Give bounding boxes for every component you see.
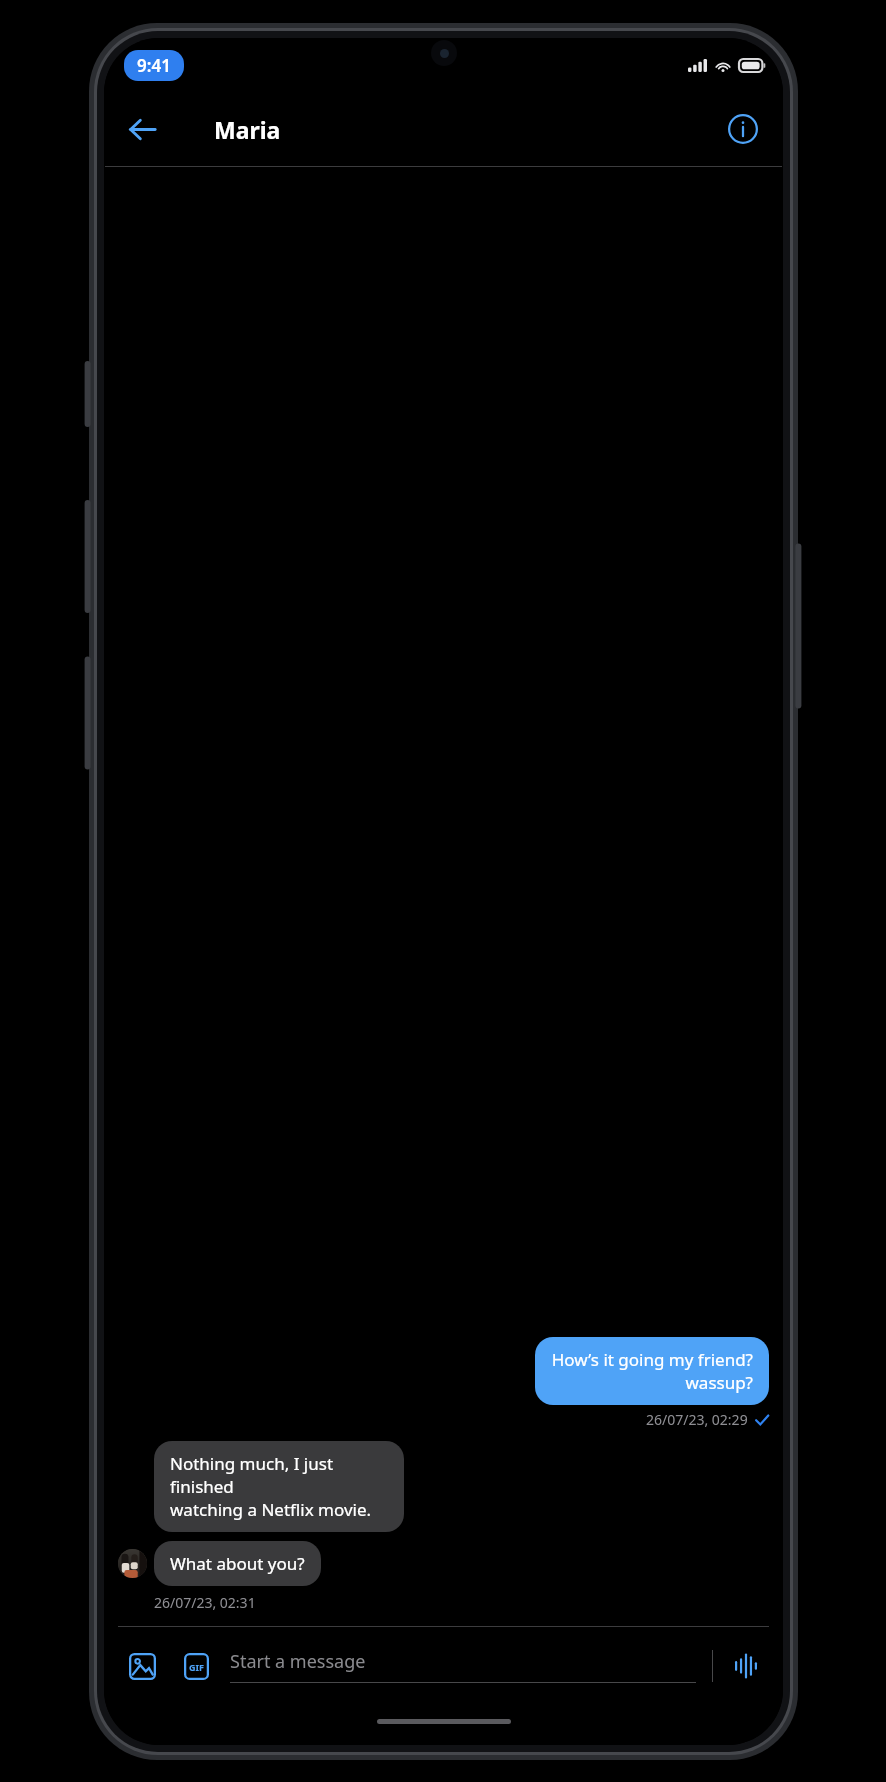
button[interactable]: Nothing much, I just finished watching a… [154, 1441, 404, 1532]
staticText: 9:41 [137, 54, 171, 77]
button[interactable]: Send image [120, 1644, 164, 1688]
staticText: What about you? [170, 1552, 305, 1575]
button[interactable]: Conversation info [717, 103, 769, 155]
staticText: How’s it going my friend? wassup? [551, 1348, 753, 1394]
staticText: 26/07/23, 02:29 [646, 1410, 748, 1429]
button[interactable]: How’s it going my friend? wassup? [535, 1337, 769, 1405]
button[interactable]: Start a message [230, 1649, 696, 1683]
staticText: Start a message [230, 1649, 366, 1674]
button[interactable]: Back [114, 101, 170, 157]
button[interactable]: What about you? [154, 1541, 321, 1586]
staticText: Nothing much, I just finished watching a… [170, 1452, 388, 1521]
staticText: Maria [214, 114, 281, 145]
staticText: 26/07/23, 02:31 [154, 1593, 256, 1612]
button[interactable]: Send GIF [174, 1644, 218, 1688]
staticText: GIF [189, 1661, 204, 1673]
button[interactable]: Maria profile photo [118, 1549, 147, 1578]
button[interactable]: Record voice message [725, 1645, 767, 1687]
